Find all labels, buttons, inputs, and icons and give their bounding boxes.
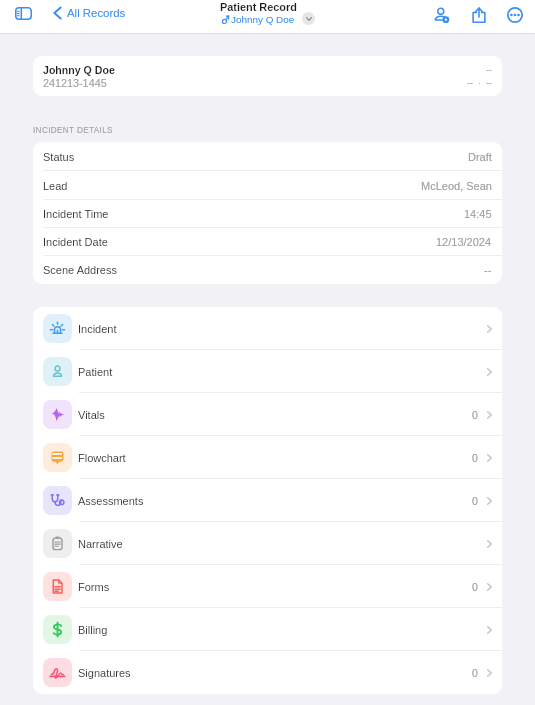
- staticText: Assessments: [78, 495, 144, 507]
- button[interactable]: Expand: [302, 12, 315, 25]
- staticText: Vitals: [78, 409, 105, 421]
- button[interactable]: Incident Date: [33, 228, 502, 256]
- staticText: 0: [472, 409, 478, 421]
- button[interactable]: Add person: [428, 3, 454, 26]
- staticText: -- · --: [467, 78, 492, 88]
- button[interactable]: Incident: [33, 307, 502, 350]
- button[interactable]: Signatures: [33, 651, 502, 694]
- staticText: Lead: [43, 180, 68, 192]
- staticText: Johnny Q Doe: [43, 64, 115, 76]
- button[interactable]: Sidebar: [10, 0, 36, 26]
- button[interactable]: Lead: [33, 171, 502, 200]
- button[interactable]: Flowchart: [33, 436, 502, 479]
- staticText: Draft: [468, 151, 492, 163]
- staticText: --: [484, 264, 492, 276]
- button[interactable]: Vitals: [33, 393, 502, 436]
- staticText: INCIDENT DETAILS: [33, 126, 113, 135]
- button[interactable]: Assessments: [33, 479, 502, 522]
- button[interactable]: Patient: [33, 350, 502, 393]
- staticText: Patient Record: [220, 1, 297, 13]
- staticText: 12/13/2024: [436, 236, 492, 248]
- staticText: 0: [472, 452, 478, 464]
- staticText: Incident Time: [43, 208, 109, 220]
- button[interactable]: Forms: [33, 565, 502, 608]
- staticText: Incident Date: [43, 236, 108, 248]
- staticText: 14:45: [464, 208, 492, 220]
- button[interactable]: Billing: [33, 608, 502, 651]
- staticText: Incident: [78, 323, 117, 335]
- staticText: Billing: [78, 624, 108, 636]
- staticText: Scene Address: [43, 264, 117, 276]
- staticText: Status: [43, 151, 75, 163]
- staticText: 0: [472, 495, 478, 507]
- button[interactable]: Incident Time: [33, 200, 502, 228]
- button[interactable]: Share: [466, 3, 492, 26]
- staticText: Narrative: [78, 538, 123, 550]
- button[interactable]: Scene Address: [33, 256, 502, 284]
- button[interactable]: All Records: [53, 6, 126, 20]
- staticText: Signatures: [78, 667, 131, 679]
- button[interactable]: Status: [33, 142, 502, 171]
- staticText: Flowchart: [78, 452, 126, 464]
- staticText: 0: [472, 667, 478, 679]
- staticText: 241213-1445: [43, 77, 107, 89]
- staticText: Patient: [78, 366, 113, 378]
- staticText: Forms: [78, 581, 110, 593]
- button[interactable]: Johnny Q Doe: [33, 56, 502, 96]
- button[interactable]: More options: [502, 3, 528, 26]
- staticText: All Records: [67, 7, 126, 20]
- staticText: 0: [472, 581, 478, 593]
- staticText: --: [486, 65, 492, 75]
- staticText: Johnny Q Doe: [231, 14, 295, 25]
- staticText: McLeod, Sean: [421, 180, 492, 192]
- button[interactable]: Narrative: [33, 522, 502, 565]
